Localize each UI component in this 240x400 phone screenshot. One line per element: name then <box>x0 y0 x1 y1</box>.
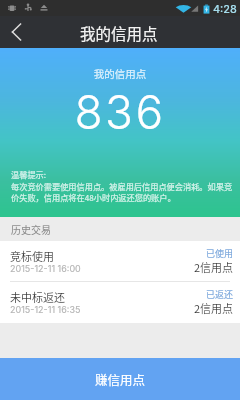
staticText: 836 <box>0 84 240 140</box>
button[interactable]: 竞标使用 <box>0 241 240 282</box>
staticText: 已使用 <box>206 247 234 260</box>
staticText: 4:28 <box>213 2 237 15</box>
staticText: 竞标使用 <box>10 248 54 264</box>
staticText: 2015-12-11 16:00 <box>10 263 81 274</box>
staticText: 未中标返还 <box>10 289 65 305</box>
staticText: 我的信用点 <box>0 66 240 81</box>
button[interactable]: Back <box>0 16 32 48</box>
button[interactable]: 赚信用点 <box>0 358 240 400</box>
staticText: 已返还 <box>206 288 234 301</box>
staticText: 2015-12-11 16:35 <box>10 304 81 315</box>
staticText: 温馨提示: <box>11 168 47 180</box>
staticText: 2信用点 <box>194 259 234 275</box>
staticText: 历史交易 <box>11 222 51 236</box>
staticText: 赚信用点 <box>95 370 146 388</box>
staticText: 每次竞价需要使用信用点。被雇用后信用点便会消耗。如果竞价失败，信用点将在48小时… <box>11 180 236 203</box>
staticText: 我的信用点 <box>80 22 158 44</box>
staticText: 2信用点 <box>194 300 234 316</box>
button[interactable]: 未中标返还 <box>0 282 240 323</box>
